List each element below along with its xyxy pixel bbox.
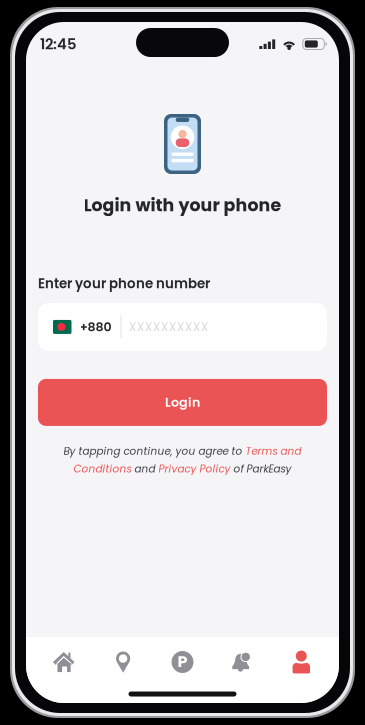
button[interactable]: Nearby parking map [93, 637, 153, 687]
button[interactable]: Home [34, 637, 93, 687]
button[interactable]: Terms and [245, 444, 301, 458]
staticText: XXXXXXXXXX [129, 318, 209, 335]
staticText: 12:45 [40, 34, 76, 54]
staticText: Login [165, 394, 200, 411]
button[interactable]: Conditions [73, 461, 131, 476]
staticText: Privacy Policy [158, 461, 230, 476]
staticText: Enter your phone number [38, 274, 210, 293]
staticText: of ParkEasy [230, 461, 291, 476]
staticText: +880 [79, 318, 111, 336]
staticText: Conditions [73, 461, 131, 476]
button[interactable]: +880 [38, 303, 327, 351]
staticText: and [131, 461, 158, 476]
button[interactable]: Profile [272, 637, 331, 687]
button[interactable]: Login [38, 379, 327, 426]
button[interactable]: Privacy Policy [158, 461, 230, 476]
staticText: Terms and [245, 444, 301, 458]
button[interactable]: Notifications [212, 637, 272, 687]
staticText: By tapping continue, you agree to [63, 444, 245, 458]
button[interactable]: My parking [153, 637, 212, 687]
staticText: P [177, 650, 187, 673]
staticText: Login with your phone [83, 193, 281, 217]
